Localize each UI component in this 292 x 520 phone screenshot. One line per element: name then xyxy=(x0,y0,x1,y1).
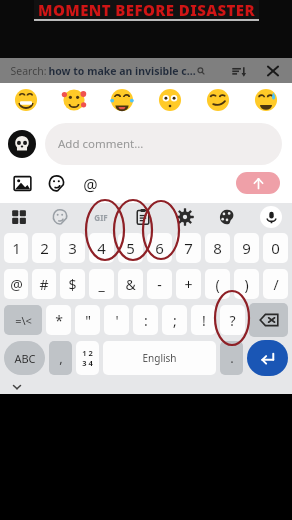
staticText: 1 2 xyxy=(82,348,93,358)
button[interactable]: : xyxy=(133,305,158,335)
button[interactable]: _ xyxy=(89,269,114,299)
staticText: . xyxy=(230,349,234,367)
button[interactable]: ; xyxy=(162,305,187,335)
button[interactable]: Add comment... xyxy=(45,123,282,165)
button[interactable]: Emoji xyxy=(14,88,38,112)
staticText: ; xyxy=(173,311,177,330)
staticText: 9 xyxy=(242,238,251,258)
staticText: ! xyxy=(202,311,206,330)
button[interactable]: Stickers xyxy=(51,208,69,226)
button[interactable]: Emoji xyxy=(158,88,182,112)
button[interactable]: GIF xyxy=(92,208,110,226)
button[interactable]: Add image xyxy=(13,174,32,193)
button[interactable]: ! xyxy=(191,305,216,335)
button[interactable]: Numbers xyxy=(76,341,99,375)
staticText: 1 xyxy=(12,238,21,258)
button[interactable]: ( xyxy=(205,269,230,299)
button[interactable]: Apps xyxy=(10,208,28,226)
button[interactable]: . xyxy=(220,341,243,375)
staticText: =\< xyxy=(15,313,32,328)
button[interactable]: 6 xyxy=(147,233,172,263)
button[interactable]: Send xyxy=(236,172,280,194)
staticText: 8 xyxy=(213,238,222,258)
staticText: ) xyxy=(244,275,249,294)
staticText: $ xyxy=(68,275,77,294)
staticText: ABC xyxy=(14,351,36,366)
button[interactable]: 9 xyxy=(234,233,259,263)
button[interactable]: Emoji xyxy=(110,88,134,112)
button[interactable]: - xyxy=(147,269,172,299)
button[interactable]: Themes xyxy=(218,208,236,226)
button[interactable]: ? xyxy=(220,305,245,335)
staticText: & xyxy=(125,275,136,294)
button[interactable]: 4 xyxy=(89,233,114,263)
staticText: 6 xyxy=(155,238,164,258)
button[interactable]: Voice input xyxy=(260,206,282,228)
staticText: + xyxy=(184,275,193,294)
button[interactable]: $ xyxy=(60,269,85,299)
button[interactable]: 7 xyxy=(176,233,201,263)
staticText: 3 xyxy=(68,238,77,258)
button[interactable]: Emoji xyxy=(206,88,230,112)
staticText: @ xyxy=(83,174,98,193)
button[interactable]: 0 xyxy=(263,233,288,263)
staticText: # xyxy=(39,275,49,294)
button[interactable]: 1 xyxy=(4,233,28,263)
button[interactable]: ) xyxy=(234,269,259,299)
button[interactable]: + xyxy=(176,269,201,299)
button[interactable]: Emoji xyxy=(254,88,278,112)
staticText: MOMENT BEFORE DISASTER xyxy=(34,0,259,19)
button[interactable]: @ xyxy=(4,269,28,299)
staticText: @ xyxy=(10,275,23,294)
staticText: - xyxy=(157,275,162,294)
button[interactable]: # xyxy=(32,269,56,299)
button[interactable]: Add sticker xyxy=(47,174,66,193)
button[interactable]: Settings xyxy=(176,208,194,226)
button[interactable]: , xyxy=(49,341,72,375)
button[interactable]: / xyxy=(263,269,288,299)
staticText: 5 xyxy=(126,238,135,258)
staticText: Search: xyxy=(9,64,48,78)
staticText: GIF xyxy=(94,212,108,223)
staticText: " xyxy=(85,311,91,330)
staticText: Add comment... xyxy=(58,136,144,152)
staticText: how to make an invisible c... xyxy=(48,64,196,78)
button[interactable]: 2 xyxy=(32,233,56,263)
button[interactable]: Profile xyxy=(8,130,36,158)
button[interactable]: Close xyxy=(265,63,281,79)
staticText: 0 xyxy=(271,238,280,258)
staticText: _ xyxy=(98,275,105,294)
staticText: : xyxy=(144,311,148,330)
staticText: , xyxy=(59,349,63,367)
button[interactable]: Backspace xyxy=(249,303,288,337)
button[interactable]: Sort xyxy=(231,63,247,79)
staticText: English xyxy=(142,351,177,365)
staticText: * xyxy=(55,311,63,330)
button[interactable]: & xyxy=(118,269,143,299)
staticText: 7 xyxy=(184,238,193,258)
staticText: 2 xyxy=(40,238,49,258)
button[interactable]: ' xyxy=(104,305,129,335)
button[interactable]: " xyxy=(75,305,100,335)
button[interactable]: 3 xyxy=(60,233,85,263)
button[interactable]: English xyxy=(103,341,216,375)
staticText: 4 xyxy=(97,238,106,258)
button[interactable]: 5 xyxy=(118,233,143,263)
staticText: ' xyxy=(115,311,119,330)
button[interactable]: Enter xyxy=(247,340,288,376)
button[interactable]: Clipboard xyxy=(134,208,152,226)
staticText: 3 4 xyxy=(82,358,93,368)
button[interactable]: ABC xyxy=(4,341,45,375)
button[interactable]: * xyxy=(46,305,71,335)
button[interactable]: Mention xyxy=(81,174,100,193)
staticText: ( xyxy=(215,275,220,294)
button[interactable]: Search: xyxy=(0,58,292,83)
button[interactable]: Emoji xyxy=(62,88,86,112)
button[interactable]: 8 xyxy=(205,233,230,263)
staticText: ? xyxy=(229,311,236,330)
staticText: / xyxy=(273,275,279,294)
button[interactable]: =\< xyxy=(4,305,42,335)
